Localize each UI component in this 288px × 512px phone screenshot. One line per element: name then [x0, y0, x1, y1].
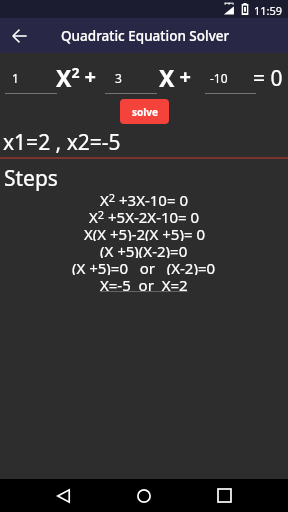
button[interactable]: Coefficient b: [105, 68, 157, 93]
staticText: X2 +5X-2X-10= 0: [89, 207, 200, 224]
staticText: Steps: [4, 164, 58, 193]
button[interactable]: solve: [120, 99, 169, 124]
staticText: = 0: [253, 64, 283, 93]
staticText: X=-5 or X=2: [100, 275, 188, 292]
staticText: x1=2 , x2=-5: [3, 128, 121, 157]
staticText: 3: [115, 70, 122, 86]
button[interactable]: Back: [40, 479, 87, 512]
staticText: X2 +3X-10= 0: [100, 190, 188, 207]
staticText: 11:59: [254, 3, 283, 18]
button[interactable]: Home: [120, 479, 167, 512]
staticText: X2 +: [56, 62, 97, 93]
staticText: solve: [132, 105, 158, 119]
button[interactable]: Coefficient c: [205, 68, 256, 93]
staticText: X +: [159, 62, 192, 93]
staticText: -10: [210, 70, 228, 86]
button[interactable]: Back: [0, 18, 38, 53]
button[interactable]: Coefficient a: [5, 68, 57, 93]
staticText: 1: [12, 70, 19, 86]
staticText: (X +5)(X-2)=0: [100, 241, 188, 258]
staticText: Quadratic Equation Solver: [61, 27, 230, 45]
button[interactable]: Recent apps: [201, 479, 248, 512]
staticText: X(X +5)-2(X +5)= 0: [84, 224, 205, 241]
staticText: (X +5)=0 or (X-2)=0: [72, 258, 216, 275]
